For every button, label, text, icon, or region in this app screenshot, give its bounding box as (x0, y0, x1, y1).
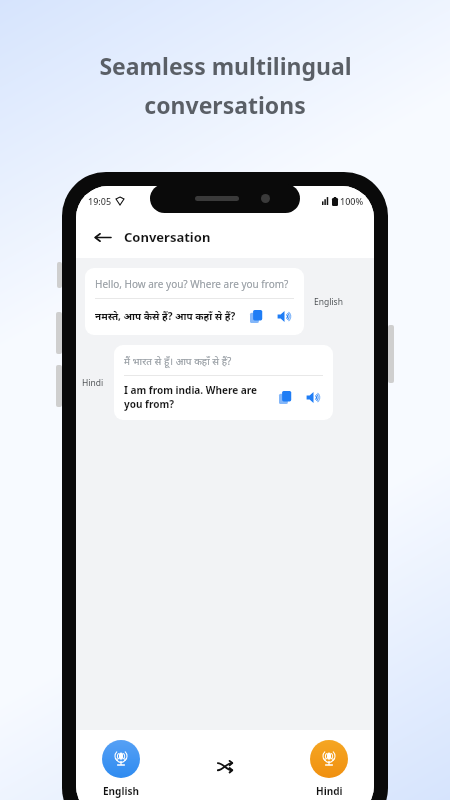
button[interactable]: Hindi (310, 740, 348, 798)
staticText: नमस्ते, आप कैसे हैं? आप कहाँ से हैं? (95, 309, 240, 323)
staticText: Hindi (82, 377, 104, 389)
staticText: English (314, 296, 343, 308)
staticText: 19:05 (88, 195, 112, 207)
button[interactable]: Speak (303, 387, 323, 407)
staticText: Hindi (316, 784, 343, 798)
staticText: मैं भारत से हूँ। आप कहाँ से हैं? (124, 354, 232, 368)
staticText: Conversation (124, 228, 211, 246)
staticText: Hello, How are you? Where are you from? (95, 277, 289, 291)
button[interactable]: मैं भारत से हूँ। आप कहाँ से हैं? (114, 345, 333, 420)
staticText: conversations (144, 89, 306, 120)
button[interactable]: Copy (275, 387, 295, 407)
button[interactable]: Hello, How are you? Where are you from? (85, 268, 304, 335)
button[interactable]: Speak (274, 306, 294, 326)
button[interactable]: Copy (246, 306, 266, 326)
staticText: I am from india. Where are you from? (124, 383, 269, 411)
button[interactable]: Back (90, 225, 114, 249)
button[interactable]: English (102, 740, 140, 798)
staticText: English (103, 784, 139, 798)
button[interactable]: Swap languages (210, 751, 240, 781)
staticText: Seamless multilingual (99, 50, 352, 81)
staticText: 100% (340, 195, 364, 207)
